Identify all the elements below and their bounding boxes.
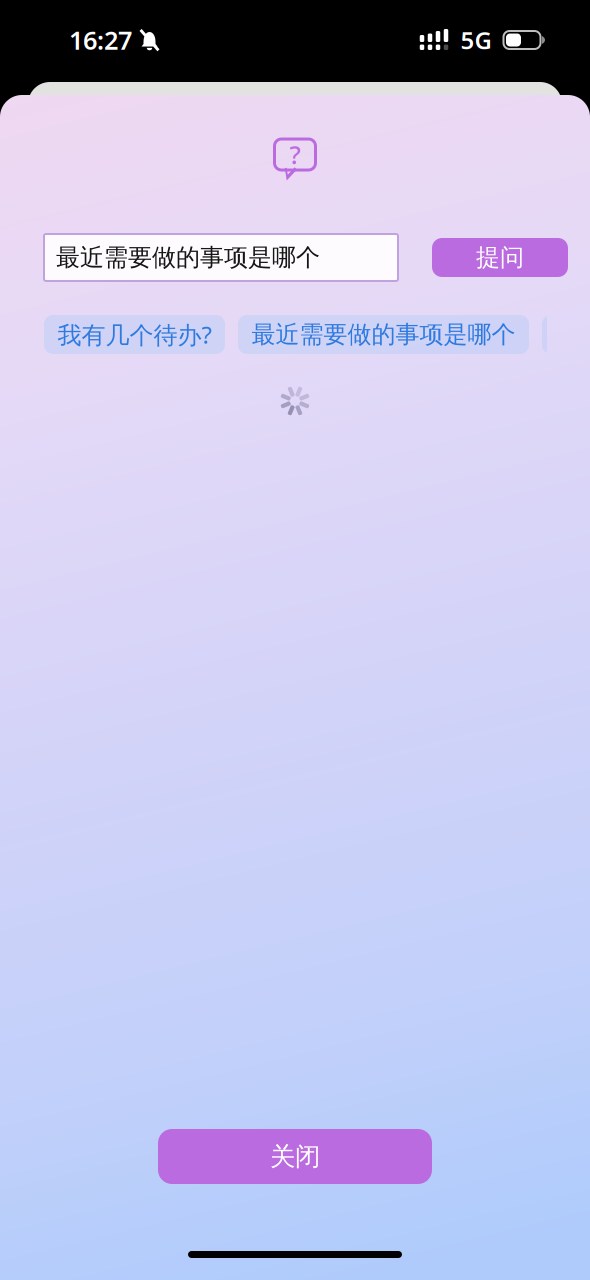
staticText: 提问 (476, 243, 524, 272)
staticText: 最近需要做的事项是哪个 (56, 243, 320, 272)
staticText: 5G (460, 24, 491, 56)
staticText: 我有几个待办? (57, 319, 211, 350)
staticText: ? (289, 138, 300, 171)
button[interactable]: 关闭 (158, 1129, 432, 1184)
staticText: 最近需要做的事项是哪个 (251, 320, 515, 349)
button[interactable]: 最近需要做的事项是哪个 (238, 315, 529, 354)
staticText: 16:27 (69, 23, 132, 57)
button[interactable]: 我有几个待办? (44, 315, 225, 354)
staticText: 关闭 (270, 1141, 320, 1172)
button[interactable]: 帮我安排一下今天的日程 (542, 315, 590, 354)
button[interactable]: 提问 (432, 238, 568, 277)
